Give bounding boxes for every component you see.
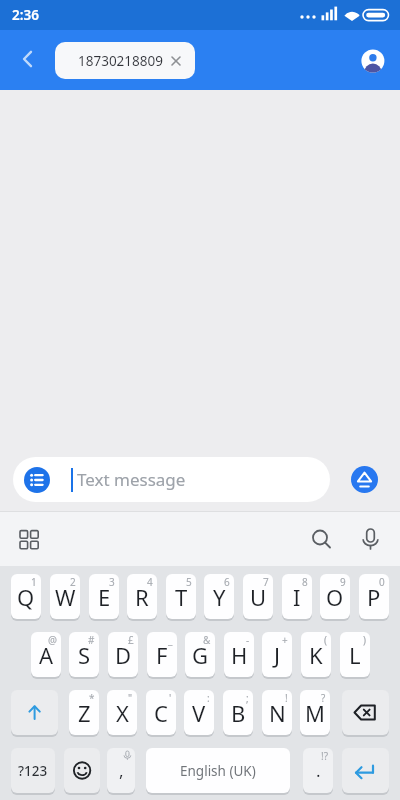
staticText: 8 xyxy=(302,575,308,589)
button[interactable] xyxy=(64,748,100,793)
button[interactable]: W xyxy=(50,574,80,619)
staticText: 1 xyxy=(31,575,37,589)
staticText: + xyxy=(282,633,288,647)
staticText: S xyxy=(78,640,91,670)
button[interactable]: M xyxy=(300,690,330,735)
button[interactable] xyxy=(0,30,48,90)
button[interactable]: X xyxy=(107,690,137,735)
staticText: ( xyxy=(324,633,327,647)
staticText: 2:36 xyxy=(12,6,39,24)
staticText: 4 xyxy=(147,575,153,589)
staticText: , xyxy=(119,759,124,782)
staticText: L xyxy=(349,640,361,670)
button[interactable]: Text message xyxy=(13,457,330,502)
staticText: @ xyxy=(48,633,57,647)
staticText: U xyxy=(250,582,267,612)
button[interactable]: English (UK) xyxy=(146,748,290,793)
staticText: ? xyxy=(321,691,326,705)
staticText: _ xyxy=(168,633,173,647)
button[interactable]: K xyxy=(301,632,331,677)
staticText: P xyxy=(367,582,381,612)
staticText: V xyxy=(192,698,206,728)
button[interactable]: I xyxy=(282,574,312,619)
button[interactable]: , xyxy=(107,748,135,793)
button[interactable]: V xyxy=(184,690,214,735)
staticText: D xyxy=(115,640,132,670)
staticText: 5 xyxy=(186,575,192,589)
button[interactable]: B xyxy=(223,690,253,735)
staticText: W xyxy=(55,582,76,612)
staticText: 2 xyxy=(70,575,76,589)
staticText: E xyxy=(98,582,111,612)
staticText: & xyxy=(203,633,211,647)
staticText: Text message xyxy=(77,468,186,491)
staticText: N xyxy=(269,698,286,728)
button[interactable]: L xyxy=(340,632,370,677)
staticText: !? xyxy=(321,749,329,763)
staticText: B xyxy=(231,698,246,728)
staticText: £ xyxy=(128,633,134,647)
button[interactable]: D xyxy=(108,632,138,677)
button[interactable] xyxy=(24,467,50,493)
button[interactable]: G xyxy=(185,632,215,677)
staticText: 7 xyxy=(263,575,269,589)
staticText: English (UK) xyxy=(180,762,256,780)
staticText: X xyxy=(116,698,129,728)
button[interactable]: Z xyxy=(69,690,99,735)
staticText: * xyxy=(89,691,95,705)
button[interactable] xyxy=(351,466,378,493)
staticText: ! xyxy=(285,691,288,705)
button[interactable]: U xyxy=(243,574,273,619)
staticText: O xyxy=(326,582,344,612)
staticText: 18730218809 xyxy=(78,52,163,70)
button[interactable] xyxy=(361,49,385,73)
button[interactable]: A xyxy=(31,632,61,677)
button[interactable]: N xyxy=(262,690,292,735)
staticText: # xyxy=(88,633,95,647)
button[interactable]: P xyxy=(359,574,389,619)
staticText: 9 xyxy=(340,575,346,589)
button[interactable]: . xyxy=(303,748,333,793)
button[interactable]: ?123 xyxy=(11,748,55,793)
staticText: ) xyxy=(363,633,366,647)
button[interactable]: C xyxy=(146,690,176,735)
button[interactable]: S xyxy=(69,632,99,677)
staticText: 6 xyxy=(224,575,230,589)
button[interactable]: R xyxy=(127,574,157,619)
button[interactable]: T xyxy=(166,574,196,619)
staticText: Y xyxy=(213,582,226,612)
button[interactable] xyxy=(342,690,389,735)
staticText: K xyxy=(309,640,323,670)
button[interactable] xyxy=(11,690,58,735)
staticText: R xyxy=(135,582,149,612)
staticText: T xyxy=(175,582,188,612)
button[interactable]: E xyxy=(89,574,119,619)
staticText: Q xyxy=(17,582,35,612)
staticText: ?123 xyxy=(18,762,48,780)
staticText: F xyxy=(156,640,168,670)
button[interactable]: 18730218809 xyxy=(55,42,195,79)
button[interactable]: Q xyxy=(11,574,41,619)
staticText: : xyxy=(207,691,210,705)
staticText: ; xyxy=(246,691,249,705)
staticText: 0 xyxy=(379,575,385,589)
staticText: Z xyxy=(78,698,91,728)
staticText: . xyxy=(316,759,321,782)
staticText: J xyxy=(274,640,281,670)
staticText: 3 xyxy=(109,575,115,589)
button[interactable] xyxy=(11,521,47,557)
staticText: ' xyxy=(169,691,172,705)
staticText: I xyxy=(293,582,301,612)
button[interactable] xyxy=(303,521,339,557)
button[interactable]: H xyxy=(224,632,254,677)
button[interactable]: Y xyxy=(204,574,234,619)
staticText: M xyxy=(305,698,325,728)
button[interactable] xyxy=(352,521,388,557)
button[interactable] xyxy=(342,748,389,793)
staticText: G xyxy=(192,640,209,670)
button[interactable]: O xyxy=(320,574,350,619)
button[interactable]: J xyxy=(262,632,292,677)
button[interactable]: F xyxy=(147,632,177,677)
staticText: - xyxy=(246,633,250,647)
staticText: A xyxy=(39,640,54,670)
